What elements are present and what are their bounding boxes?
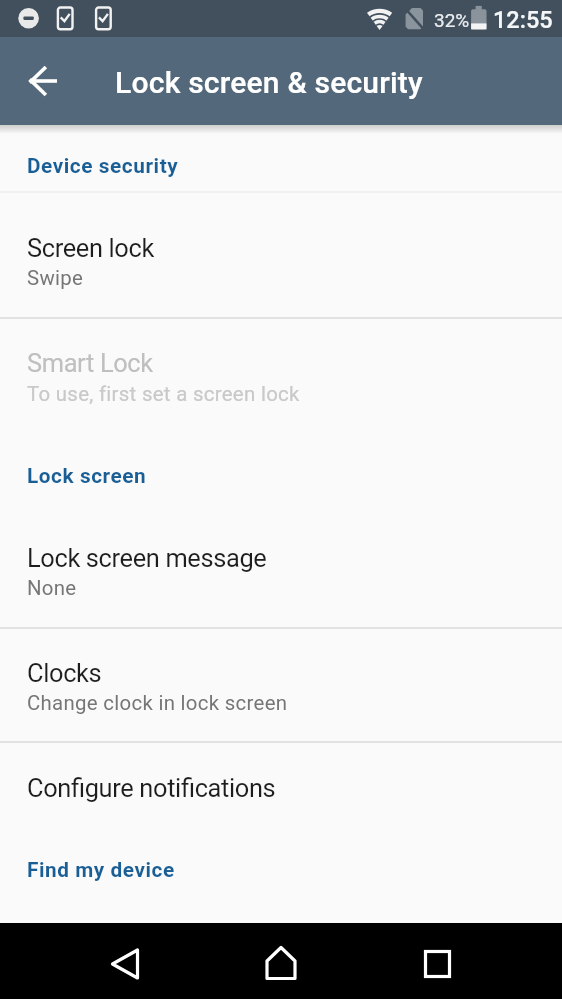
button[interactable] (0, 628, 562, 741)
staticText: Lock screen & security (115, 65, 423, 100)
staticText: Configure notifications (27, 773, 276, 803)
staticText: Find my device (27, 858, 175, 882)
button[interactable] (0, 742, 562, 826)
staticText: To use, first set a screen lock (27, 382, 300, 406)
staticText: Screen lock (27, 233, 154, 263)
button[interactable] (0, 502, 562, 627)
staticText: Lock screen (27, 464, 147, 488)
button[interactable] (0, 192, 562, 317)
staticText: 12:55 (493, 6, 553, 34)
staticText: Smart Lock (27, 348, 153, 378)
staticText: Lock screen message (27, 543, 267, 573)
staticText: Change clock in lock screen (27, 691, 288, 715)
button[interactable] (69, 923, 181, 999)
staticText: Device security (27, 154, 179, 178)
staticText: Clocks (27, 658, 102, 688)
staticText: None (27, 576, 77, 600)
button[interactable] (0, 318, 562, 431)
staticText: 32% (434, 9, 470, 31)
button[interactable] (4, 41, 84, 121)
button[interactable] (225, 923, 337, 999)
button[interactable] (381, 923, 493, 999)
staticText: Swipe (27, 266, 84, 290)
